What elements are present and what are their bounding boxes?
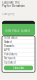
staticText: Category (2, 12, 14, 15)
staticText: Calculate the (2, 1, 20, 4)
staticText: Rewards (4, 44, 14, 48)
staticText: Total Value Locked (5, 29, 30, 32)
button[interactable]: Calculate (4, 66, 33, 70)
staticText: Calculate (12, 66, 24, 70)
staticText: Total value (4, 36, 18, 39)
staticText: Updated (4, 61, 16, 64)
staticText: Pay for Berachain (2, 4, 25, 8)
staticText: APR (4, 48, 10, 52)
staticText: Network (4, 56, 15, 60)
staticText: Validators (4, 52, 17, 56)
staticText: Staked (4, 40, 12, 44)
